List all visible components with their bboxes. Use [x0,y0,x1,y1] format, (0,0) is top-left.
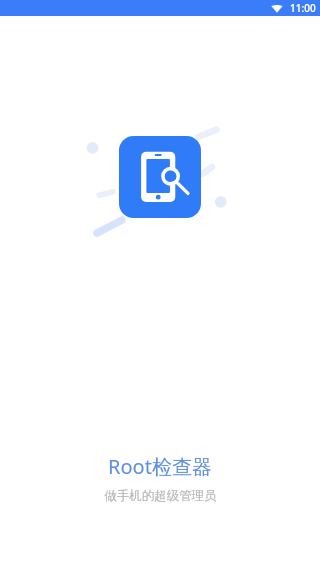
staticText: Root检查器 [108,453,212,480]
staticText: 11:00 [290,1,316,15]
staticText: 做手机的超级管理员 [104,488,217,504]
